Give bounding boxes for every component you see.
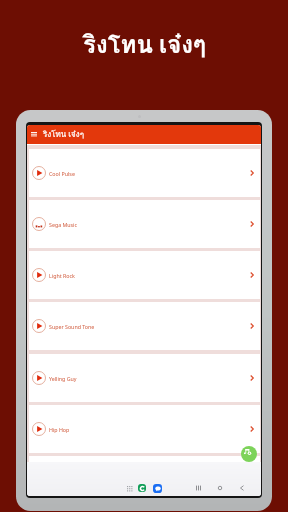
button[interactable]: Home <box>214 482 226 494</box>
staticText: Light Rock <box>49 272 75 279</box>
button[interactable]: Back <box>236 482 248 494</box>
staticText: Sega Music <box>49 221 78 228</box>
button[interactable]: Add ringtone <box>241 446 257 462</box>
button[interactable]: Messages <box>153 484 162 493</box>
button[interactable]: Hip Hop <box>29 405 260 453</box>
staticText: ริงโทน เจ๋งๆ <box>43 128 84 141</box>
button[interactable]: Open navigation menu <box>27 128 40 141</box>
staticText: Hip Hop <box>49 426 70 433</box>
button[interactable]: Recent apps <box>193 482 205 494</box>
button[interactable]: All apps <box>127 486 133 492</box>
button[interactable]: Light Rock <box>29 251 260 299</box>
staticText: Cool Pulse <box>49 170 75 177</box>
button[interactable]: Super Sound Tone <box>29 302 260 350</box>
staticText: Yelling Guy <box>49 375 77 382</box>
button[interactable]: Sega Music <box>29 200 260 248</box>
button[interactable]: Cool Pulse <box>29 149 260 197</box>
staticText: Super Sound Tone <box>49 323 95 330</box>
button[interactable]: Phone <box>138 484 146 492</box>
staticText: ริงโทน เจ๋งๆ <box>83 25 206 63</box>
button[interactable]: Yelling Guy <box>29 354 260 402</box>
